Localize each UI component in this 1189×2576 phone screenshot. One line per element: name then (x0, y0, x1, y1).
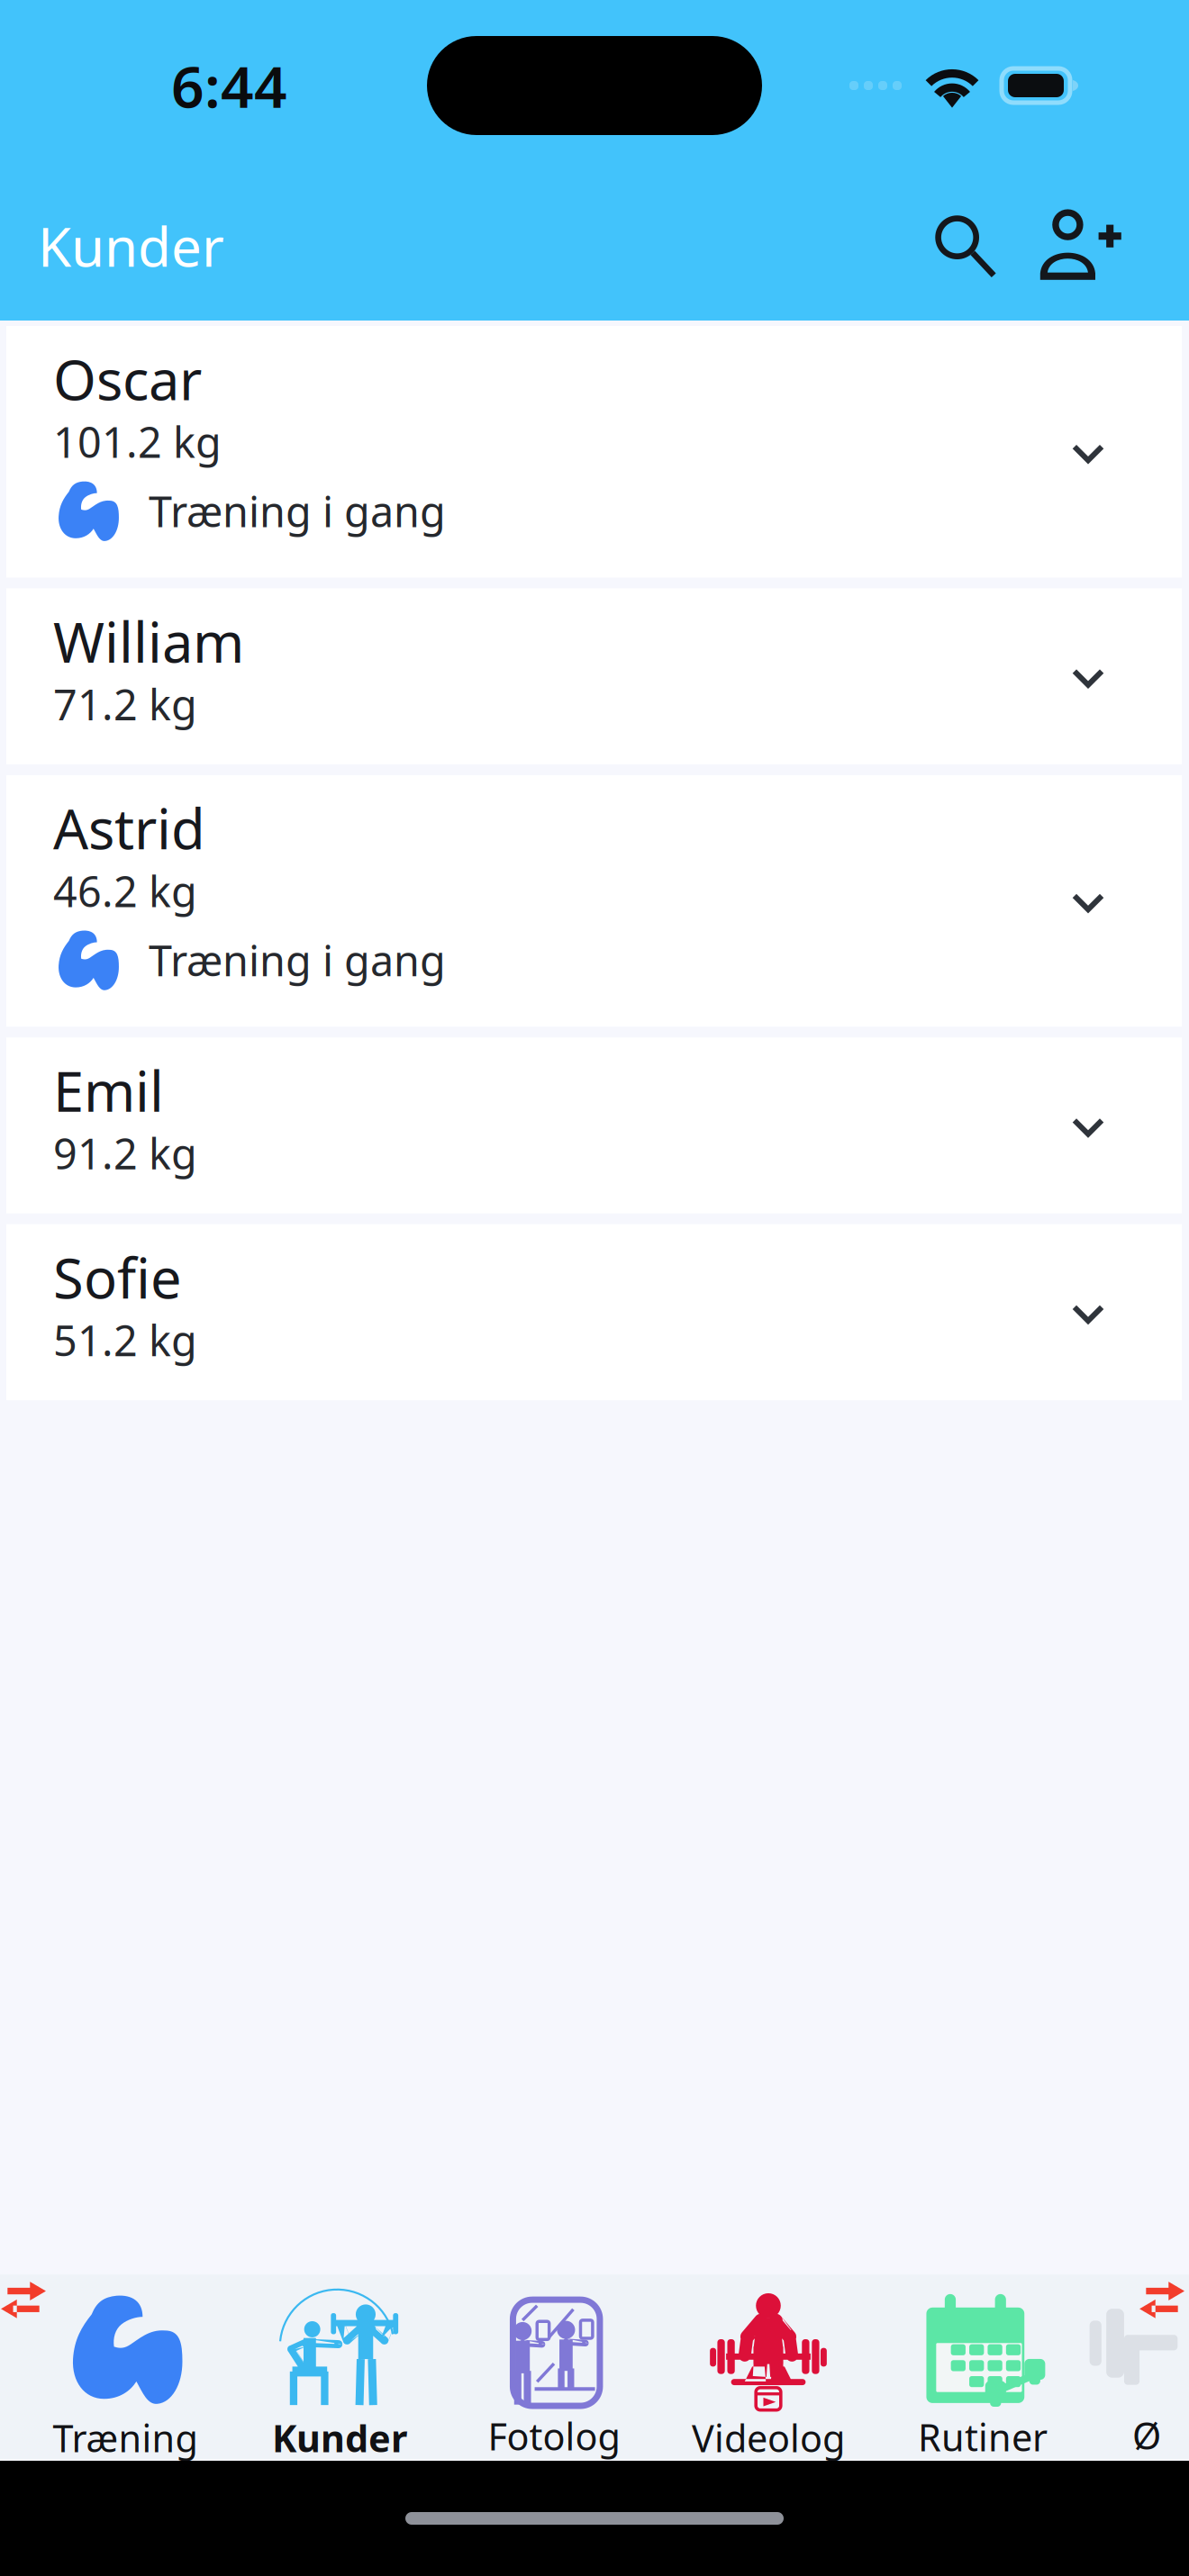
staticText: Rutiner (918, 2412, 1048, 2462)
button[interactable]: Oscar (6, 326, 1182, 578)
button[interactable]: Kunder (232, 2287, 447, 2463)
staticText: Oscar (53, 342, 202, 415)
staticText: Videolog (692, 2413, 845, 2463)
staticText: William (53, 605, 244, 678)
button[interactable]: William (6, 588, 1182, 764)
staticText: Astrid (53, 791, 205, 865)
staticText: Kunder (38, 210, 224, 282)
button[interactable]: Ø (1090, 2290, 1189, 2460)
button[interactable]: Search (911, 191, 1021, 301)
staticText: Træning i gang (149, 483, 446, 539)
staticText: Træning i gang (149, 932, 446, 988)
button[interactable]: Træning (18, 2287, 232, 2463)
staticText: Fotolog (488, 2411, 620, 2461)
button[interactable]: Videolog (661, 2287, 876, 2463)
button[interactable]: Fotolog (447, 2289, 661, 2461)
button[interactable]: Sofie (6, 1224, 1182, 1400)
staticText: Emil (53, 1054, 164, 1127)
staticText: 101.2 kg (53, 414, 222, 469)
button[interactable]: Astrid (6, 775, 1182, 1027)
staticText: 6:44 (171, 47, 287, 124)
staticText: Ø (1132, 2410, 1161, 2460)
staticText: 71.2 kg (53, 676, 197, 732)
button[interactable]: Rutiner (876, 2288, 1090, 2462)
staticText: Kunder (272, 2413, 407, 2463)
staticText: Sofie (53, 1240, 182, 1314)
staticText: 46.2 kg (53, 863, 197, 919)
button[interactable]: Emil (6, 1038, 1182, 1213)
staticText: Træning (53, 2413, 198, 2463)
staticText: 51.2 kg (53, 1312, 197, 1368)
staticText: 91.2 kg (53, 1125, 197, 1181)
button[interactable]: Add client (1021, 187, 1138, 304)
